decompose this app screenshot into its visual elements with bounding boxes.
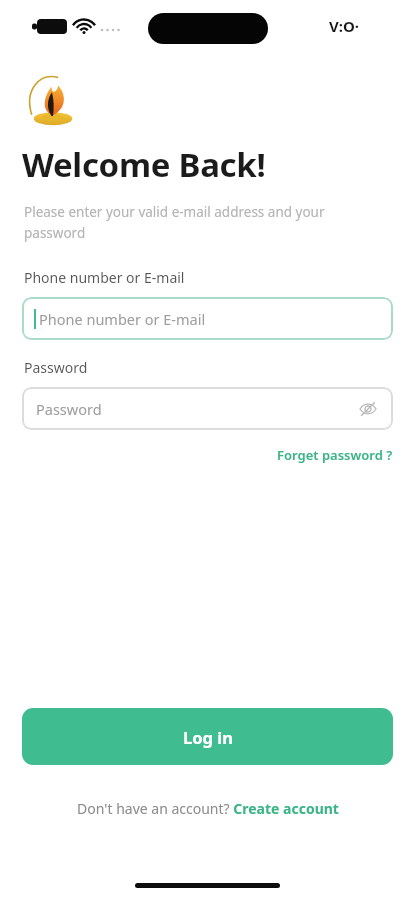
staticText: Password — [24, 358, 88, 377]
button[interactable]: Don't have an account? Create account — [73, 795, 343, 822]
button[interactable]: Phone number or E-mail — [22, 297, 393, 340]
staticText: Please enter your valid e-mail address a… — [24, 203, 325, 242]
staticText: Welcome Back! — [22, 142, 266, 187]
button[interactable]: Log in — [22, 708, 393, 765]
button[interactable]: Password — [22, 387, 393, 430]
button[interactable]: Show password — [355, 396, 381, 422]
staticText: Don't have an account? Create account — [77, 799, 339, 818]
staticText: Password — [36, 399, 355, 419]
staticText: Phone number or E-mail — [39, 309, 206, 329]
staticText: Forget password ? — [277, 446, 393, 464]
staticText: Phone number or E-mail — [24, 268, 185, 287]
staticText: V:O· — [329, 16, 360, 36]
staticText: Log in — [183, 726, 233, 748]
button[interactable]: Forget password ? — [269, 444, 415, 466]
